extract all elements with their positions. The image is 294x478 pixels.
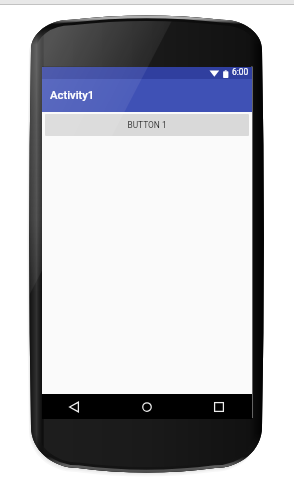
- staticText: 6:00: [232, 67, 249, 77]
- staticText: BUTTON 1: [127, 120, 167, 130]
- button[interactable]: Back: [64, 397, 84, 417]
- button[interactable]: Home: [137, 397, 157, 417]
- button[interactable]: BUTTON 1: [45, 114, 249, 136]
- button[interactable]: Recent apps: [209, 397, 229, 417]
- staticText: Activity1: [50, 89, 95, 102]
